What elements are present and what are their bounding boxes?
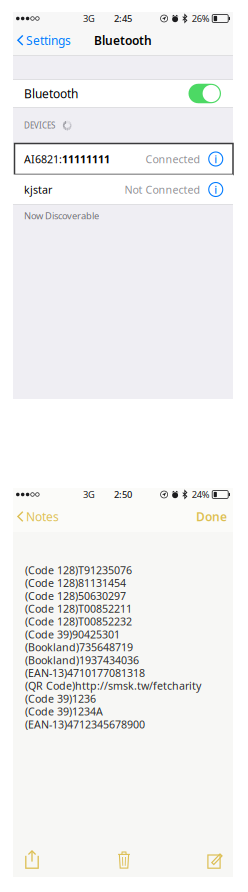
staticText: (Code 128)T00852232 (25, 614, 132, 629)
staticText: Bluetooth (24, 85, 78, 101)
button[interactable]: AI6821: (13, 143, 233, 174)
staticText: 3G (83, 488, 95, 501)
button[interactable]: Notes (13, 503, 59, 529)
button[interactable]: Done (196, 503, 233, 529)
button[interactable]: Bluetooth (13, 79, 233, 107)
staticText: Notes (26, 508, 59, 524)
staticText: (Code 128)50630297 (25, 589, 126, 603)
staticText: (Code 39)90425301 (25, 627, 120, 641)
staticText: (Code 39)1236 (25, 691, 96, 706)
staticText: (Code 128)T00852211 (25, 601, 132, 616)
staticText: Not Connected (124, 182, 200, 197)
staticText: Now Discoverable (24, 209, 99, 222)
button[interactable]: Delete (105, 847, 143, 871)
button[interactable]: kjstar (13, 174, 233, 204)
staticText: (Code 128)T91235076 (25, 563, 132, 577)
staticText: (Code 39)1234A (25, 704, 103, 719)
staticText: (EAN-13)4710177081318 (25, 666, 145, 680)
staticText: (Bookland)1937434036 (25, 653, 139, 667)
staticText: i (214, 152, 217, 166)
staticText: Bluetooth (94, 32, 152, 48)
staticText: 24% (192, 488, 210, 501)
button[interactable]: Compose (185, 847, 223, 871)
staticText: DEVICES (24, 120, 55, 131)
staticText: i (214, 182, 217, 197)
staticText: 11111111 (62, 152, 110, 166)
staticText: Done (196, 508, 227, 524)
button[interactable]: Settings (13, 27, 71, 53)
staticText: AI6821: (24, 152, 62, 166)
staticText: 26% (192, 12, 210, 25)
staticText: (Code 128)81131454 (25, 576, 126, 590)
staticText: Connected (145, 152, 200, 166)
staticText: 2:45 (114, 12, 132, 25)
button[interactable]: Share (25, 847, 63, 871)
staticText: (Bookland)735648719 (25, 640, 133, 654)
staticText: (EAN-13)4712345678900 (25, 717, 145, 731)
staticText: 3G (83, 12, 95, 25)
staticText: (QR Code)http://smsk.tw/fetcharity (25, 679, 201, 693)
staticText: 2:50 (114, 488, 132, 501)
staticText: Settings (26, 32, 71, 48)
staticText: kjstar (24, 182, 52, 197)
